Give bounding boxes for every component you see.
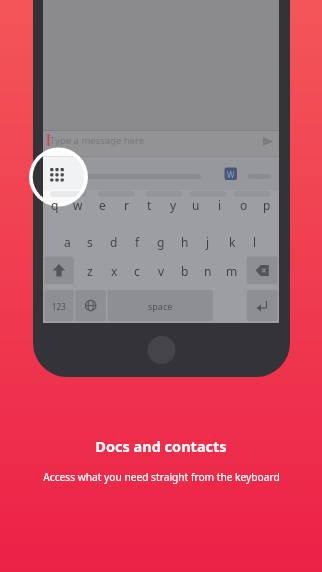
staticText: n (204, 263, 212, 279)
staticText: a (64, 234, 71, 250)
staticText: Type a message here (50, 134, 145, 147)
staticText: v (158, 263, 165, 279)
button[interactable]: Docs and contacts (0, 436, 322, 456)
staticText: m (226, 263, 238, 279)
staticText: o (240, 197, 248, 213)
staticText: u (192, 197, 200, 213)
staticText: q (51, 197, 59, 213)
staticText: f (135, 234, 140, 250)
staticText: s (87, 234, 93, 250)
staticText: y (170, 197, 177, 213)
staticText: e (99, 197, 106, 213)
staticText: w (73, 197, 83, 213)
staticText: i (218, 197, 222, 213)
staticText: x (111, 263, 118, 279)
staticText: j (206, 234, 210, 250)
staticText: z (87, 263, 93, 279)
staticText: r (124, 197, 129, 213)
staticText: g (157, 234, 165, 250)
staticText: c (134, 263, 140, 279)
staticText: Access what you need straight from the k… (43, 470, 280, 484)
staticText: d (110, 234, 118, 250)
staticText: W (227, 169, 235, 180)
staticText: k (229, 234, 236, 250)
staticText: space (148, 300, 173, 312)
staticText: Docs and contacts (95, 436, 227, 456)
staticText: t (147, 197, 152, 213)
staticText: h (181, 234, 189, 250)
staticText: l (253, 234, 257, 250)
staticText: 123 (52, 301, 66, 312)
staticText: p (263, 197, 271, 213)
staticText: b (181, 263, 189, 279)
